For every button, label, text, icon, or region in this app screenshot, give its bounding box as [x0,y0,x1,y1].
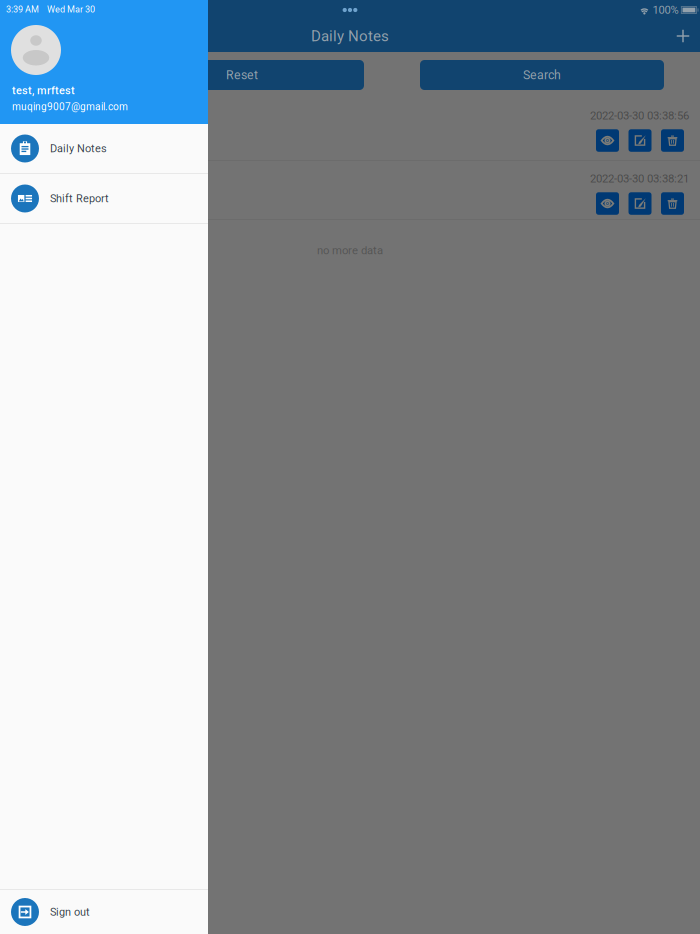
staticText: test, mrftest [12,84,75,97]
staticText: Sign out [50,906,90,918]
button[interactable]: Sign out [0,890,208,934]
button[interactable]: Daily Notes [0,124,208,173]
button[interactable]: View [596,129,619,152]
staticText: Wed Mar 30 [47,4,95,15]
button[interactable]: Delete [661,129,684,152]
staticText: Daily Notes [311,27,389,45]
staticText: 100% [652,3,678,16]
button[interactable]: Edit [628,129,651,152]
staticText: 2022-03-30 03:38:56 [590,109,689,122]
staticText: no more data [317,244,383,257]
staticText: muqing9007@gmail.com [12,101,128,113]
button[interactable]: View [596,192,619,215]
staticText: Search [523,68,561,82]
button[interactable]: Delete [661,192,684,215]
button[interactable]: Search [420,60,664,90]
button[interactable]: Edit [628,192,651,215]
staticText: Reset [226,68,258,82]
button[interactable]: Add note [668,21,698,51]
button[interactable]: Reset [120,60,364,90]
staticText: Daily Notes [50,142,107,155]
staticText: 3:39 AM [6,4,39,15]
staticText: Shift Report [50,192,109,205]
staticText: 2022-03-30 03:38:21 [590,172,689,185]
button[interactable]: Shift Report [0,174,208,223]
